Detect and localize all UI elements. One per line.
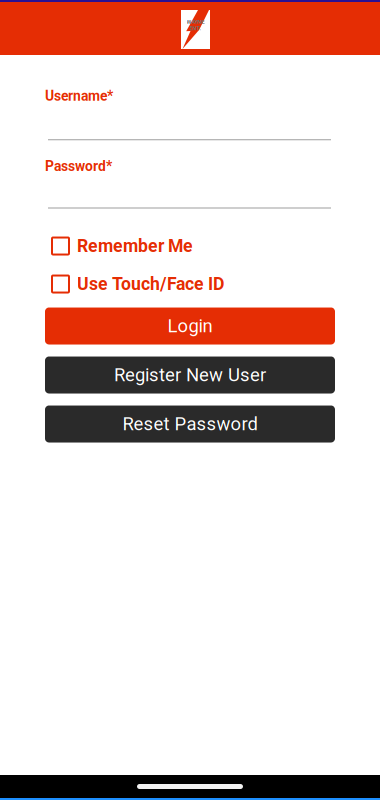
- staticText: Use Touch/Face ID: [77, 274, 224, 294]
- button[interactable]: Remember Me: [45, 237, 335, 254]
- staticText: Password*: [45, 158, 112, 175]
- staticText: Remember Me: [77, 236, 193, 256]
- staticText: Register New User: [114, 364, 266, 386]
- staticText: Reset Password: [122, 413, 257, 435]
- button[interactable]: Register New User: [45, 356, 335, 393]
- button[interactable]: Login: [45, 307, 335, 344]
- button[interactable]: Reset Password: [45, 405, 335, 442]
- staticText: Login: [167, 315, 212, 337]
- button[interactable]: Use Touch/Face ID: [45, 275, 335, 292]
- staticText: WAYNE: [186, 18, 204, 25]
- staticText: Username*: [45, 88, 113, 104]
- staticText: ENT.: [189, 25, 201, 32]
